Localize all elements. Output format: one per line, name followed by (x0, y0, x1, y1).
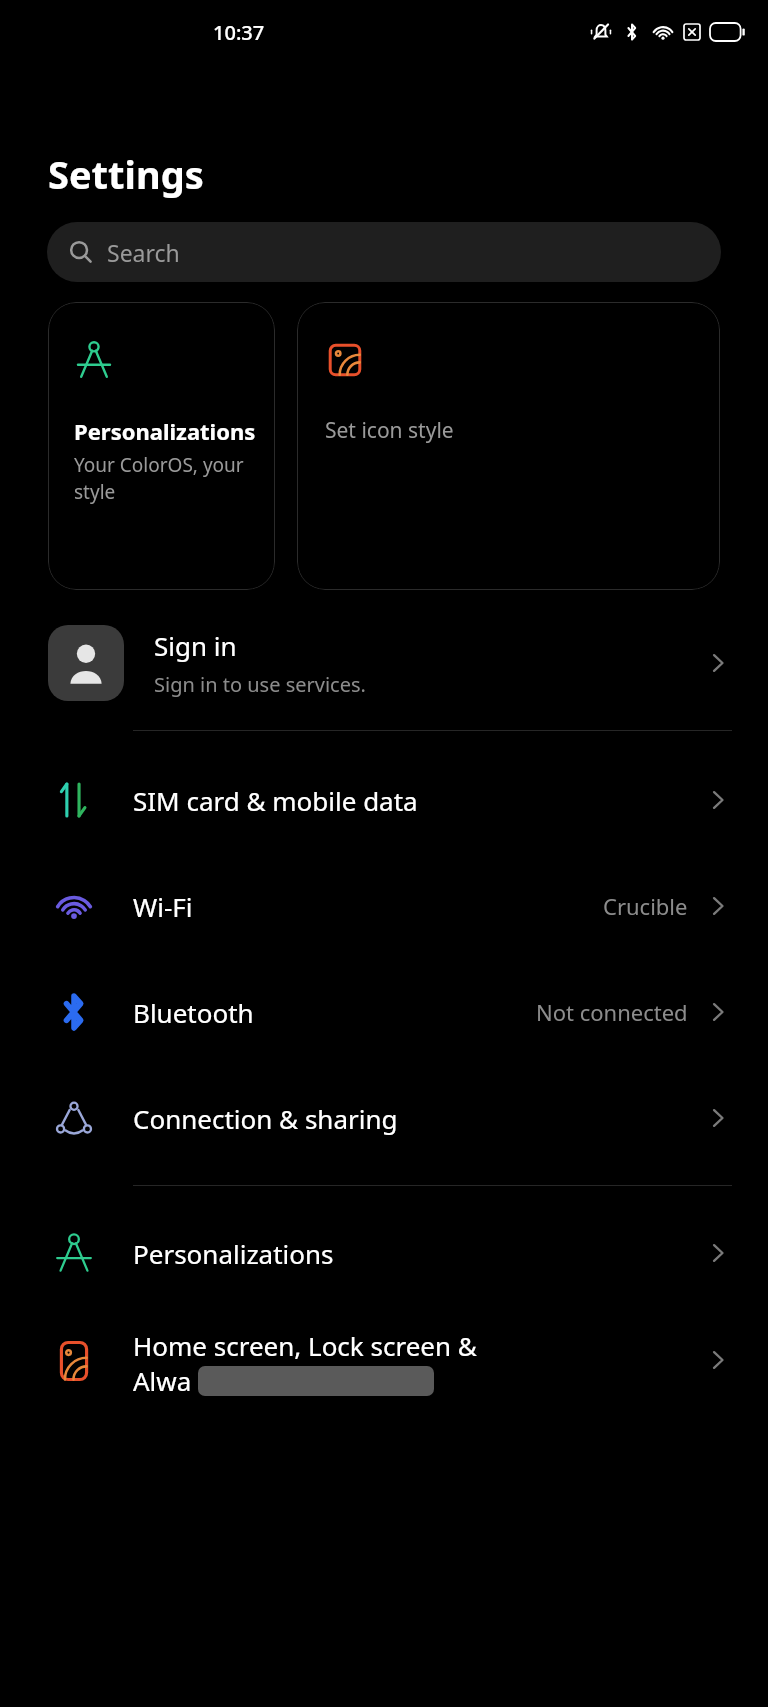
other: Open (704, 1346, 732, 1374)
staticText: Wi-Fi (133, 889, 193, 924)
staticText: Home screen, Lock screen & (133, 1328, 477, 1363)
button[interactable]: Personalizations (48, 302, 275, 590)
button[interactable]: SIM card & mobile data (0, 747, 768, 853)
other: Open (704, 1104, 732, 1132)
button[interactable]: Set icon style (297, 302, 720, 590)
staticText: Settings (48, 148, 204, 200)
staticText: SIM card & mobile data (133, 783, 418, 818)
staticText: Bluetooth (133, 995, 254, 1030)
other: Open (704, 892, 732, 920)
other: Open (704, 1239, 732, 1267)
button[interactable]: Search (47, 222, 721, 282)
staticText: Personalizations (74, 416, 256, 446)
button[interactable]: Bluetooth (0, 959, 768, 1065)
staticText: Personalizations (133, 1236, 334, 1271)
staticText: Your ColorOS, your style (74, 452, 265, 505)
staticText: Search (107, 237, 180, 268)
staticText: Sign in to use services. (154, 671, 366, 698)
staticText: Sign in (154, 628, 237, 663)
staticText: Alwa (133, 1363, 192, 1398)
button[interactable]: Sign in (0, 614, 768, 712)
staticText: Set icon style (325, 416, 454, 445)
button[interactable]: Home screen, Lock screen & (0, 1306, 768, 1446)
other: Open (704, 998, 732, 1026)
other: Open (704, 649, 732, 677)
staticText: Connection & sharing (133, 1101, 398, 1136)
staticText: Crucible (603, 891, 688, 921)
staticText: 10:37 (213, 19, 265, 46)
button[interactable]: Wi-Fi (0, 853, 768, 959)
button[interactable]: Personalizations (0, 1200, 768, 1306)
staticText: Not connected (536, 997, 688, 1027)
button[interactable]: Connection & sharing (0, 1065, 768, 1171)
other: Open (704, 786, 732, 814)
